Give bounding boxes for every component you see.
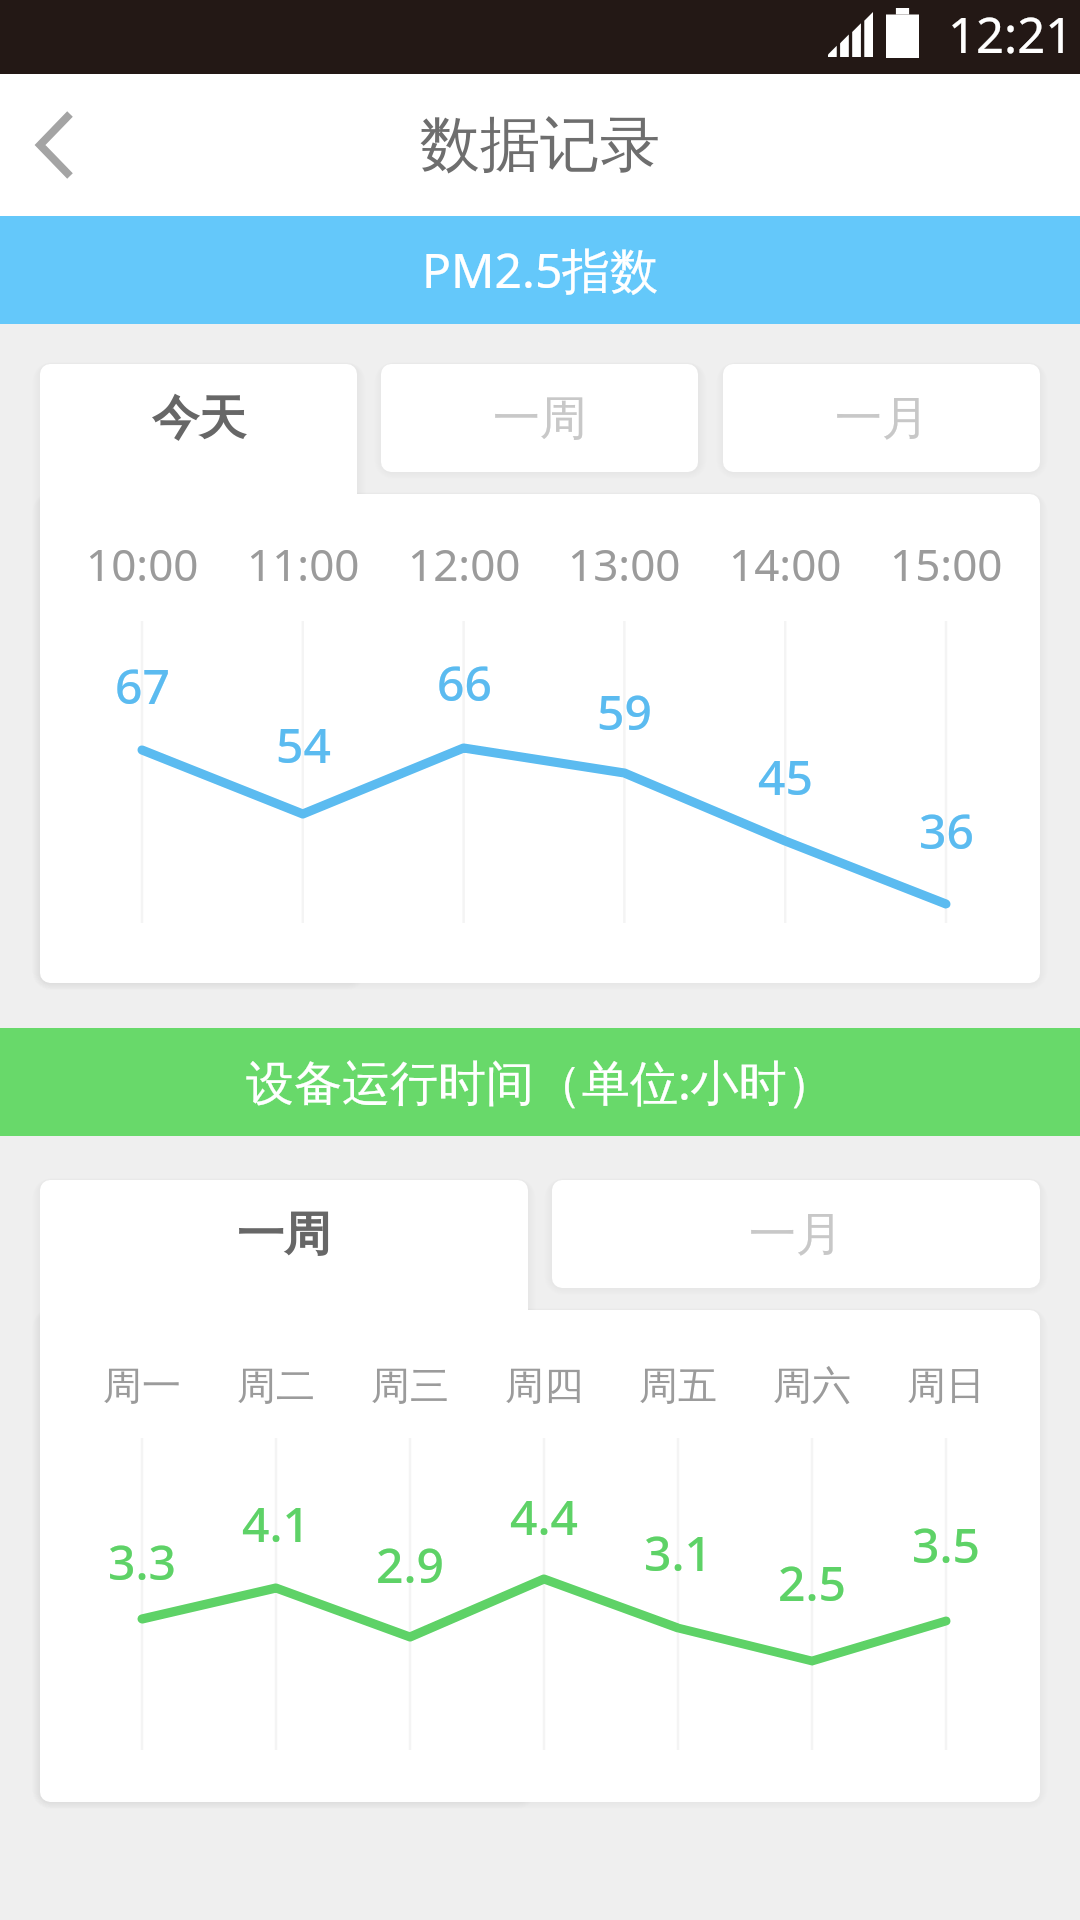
staticText: 11:00 <box>247 534 360 594</box>
staticText: 周五 <box>639 1361 717 1410</box>
button[interactable]: Back <box>0 74 116 216</box>
button[interactable]: 一周 <box>40 1180 528 1326</box>
staticText: 周三 <box>371 1361 449 1410</box>
staticText: 59 <box>597 679 652 744</box>
staticText: 一周 <box>493 389 587 448</box>
button[interactable]: 一周 <box>381 364 698 472</box>
staticText: 周二 <box>237 1361 315 1410</box>
staticText: 一周 <box>237 1205 331 1264</box>
staticText: 12:00 <box>408 534 521 594</box>
staticText: 2.9 <box>376 1532 444 1597</box>
staticText: PM2.5指数 <box>422 237 659 303</box>
staticText: 14:00 <box>729 534 842 594</box>
staticText: 3.5 <box>912 1512 980 1577</box>
staticText: 13:00 <box>568 534 681 594</box>
staticText: 66 <box>437 650 492 715</box>
staticText: 数据记录 <box>420 107 660 183</box>
staticText: 周日 <box>907 1361 985 1410</box>
staticText: 45 <box>758 744 813 809</box>
staticText: 周一 <box>103 1361 181 1410</box>
staticText: 67 <box>115 653 170 718</box>
button[interactable]: 今天 <box>40 364 357 510</box>
other: Signal strength <box>828 12 873 57</box>
staticText: 今天 <box>152 389 246 448</box>
staticText: 设备运行时间（单位:小时） <box>246 1049 835 1115</box>
staticText: 一月 <box>835 389 929 448</box>
staticText: 36 <box>919 798 974 863</box>
staticText: 12:21 <box>948 1 1074 68</box>
staticText: 10:00 <box>86 534 199 594</box>
staticText: 3.3 <box>108 1529 176 1594</box>
staticText: 2.5 <box>778 1550 846 1615</box>
staticText: 54 <box>276 712 331 777</box>
staticText: 3.1 <box>644 1520 712 1585</box>
button[interactable]: 一月 <box>723 364 1040 472</box>
staticText: 4.4 <box>510 1484 578 1549</box>
button[interactable]: 一月 <box>552 1180 1040 1288</box>
staticText: 15:00 <box>890 534 1003 594</box>
other: Battery full <box>886 8 919 58</box>
staticText: 周四 <box>505 1361 583 1410</box>
staticText: 周六 <box>773 1361 851 1410</box>
staticText: 4.1 <box>242 1491 310 1556</box>
staticText: 一月 <box>749 1205 843 1264</box>
